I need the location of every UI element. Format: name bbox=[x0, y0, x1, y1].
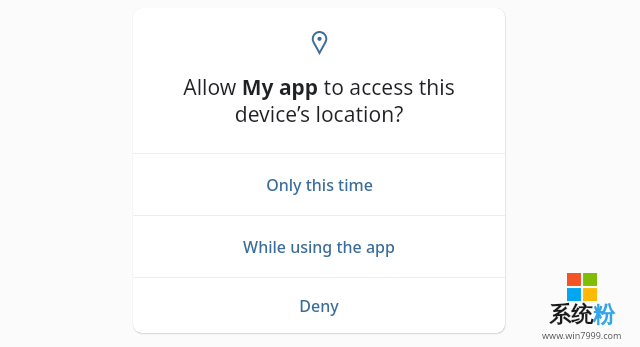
button[interactable]: Deny bbox=[133, 278, 505, 333]
button[interactable]: While using the app bbox=[133, 216, 505, 277]
staticText: Only this time bbox=[266, 174, 373, 196]
staticText: 粉 bbox=[593, 301, 615, 329]
staticText: Deny bbox=[299, 295, 339, 317]
button[interactable]: Only this time bbox=[133, 154, 505, 215]
staticText: While using the app bbox=[243, 236, 395, 258]
staticText: www.win7999.com bbox=[542, 329, 622, 341]
staticText: Allow My app to access this device’s loc… bbox=[153, 73, 485, 128]
other: Location bbox=[311, 31, 328, 54]
staticText: 系统 bbox=[549, 301, 593, 329]
